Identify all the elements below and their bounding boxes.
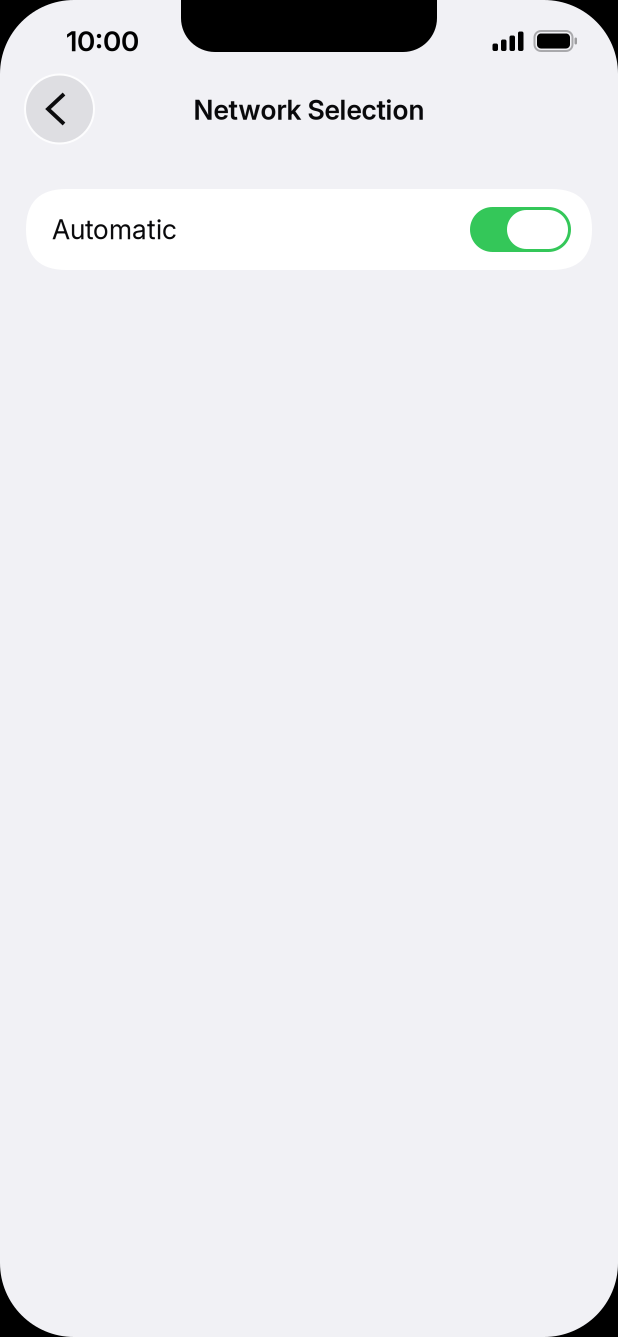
staticText: Network Selection [193, 94, 424, 126]
button[interactable]: Back [24, 73, 95, 144]
button[interactable]: Automatic [26, 189, 592, 270]
staticText: 10:00 [66, 24, 139, 58]
staticText: Automatic [52, 213, 177, 246]
